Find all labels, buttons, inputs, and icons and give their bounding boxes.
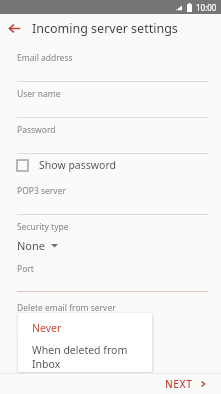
button[interactable]: POP3 server — [0, 179, 221, 215]
staticText: Security type — [17, 221, 69, 233]
staticText: Email address — [17, 52, 73, 64]
button[interactable]: Never — [18, 313, 152, 342]
button[interactable]: Show password — [0, 154, 221, 176]
button[interactable]: Password — [0, 118, 221, 154]
button[interactable]: When deleted from Inbox — [18, 342, 152, 372]
button[interactable]: Security type — [0, 215, 221, 261]
staticText: None — [17, 238, 46, 253]
button[interactable]: Port — [0, 261, 221, 292]
staticText: Never — [32, 321, 62, 335]
staticText: Password — [17, 124, 56, 136]
staticText: Port — [17, 263, 34, 275]
staticText: Delete email from server — [17, 302, 116, 314]
staticText: Show password — [39, 158, 116, 172]
button[interactable]: Back — [0, 14, 28, 42]
button[interactable]: NEXT — [159, 375, 213, 393]
staticText: 10:00 — [196, 2, 217, 13]
staticText: NEXT — [165, 377, 193, 391]
button[interactable]: Email address — [0, 46, 221, 82]
staticText: POP3 server — [17, 185, 66, 197]
staticText: User name — [17, 88, 61, 100]
staticText: When deleted from Inbox — [32, 343, 152, 371]
button[interactable]: User name — [0, 82, 221, 118]
staticText: Incoming server settings — [32, 20, 178, 37]
